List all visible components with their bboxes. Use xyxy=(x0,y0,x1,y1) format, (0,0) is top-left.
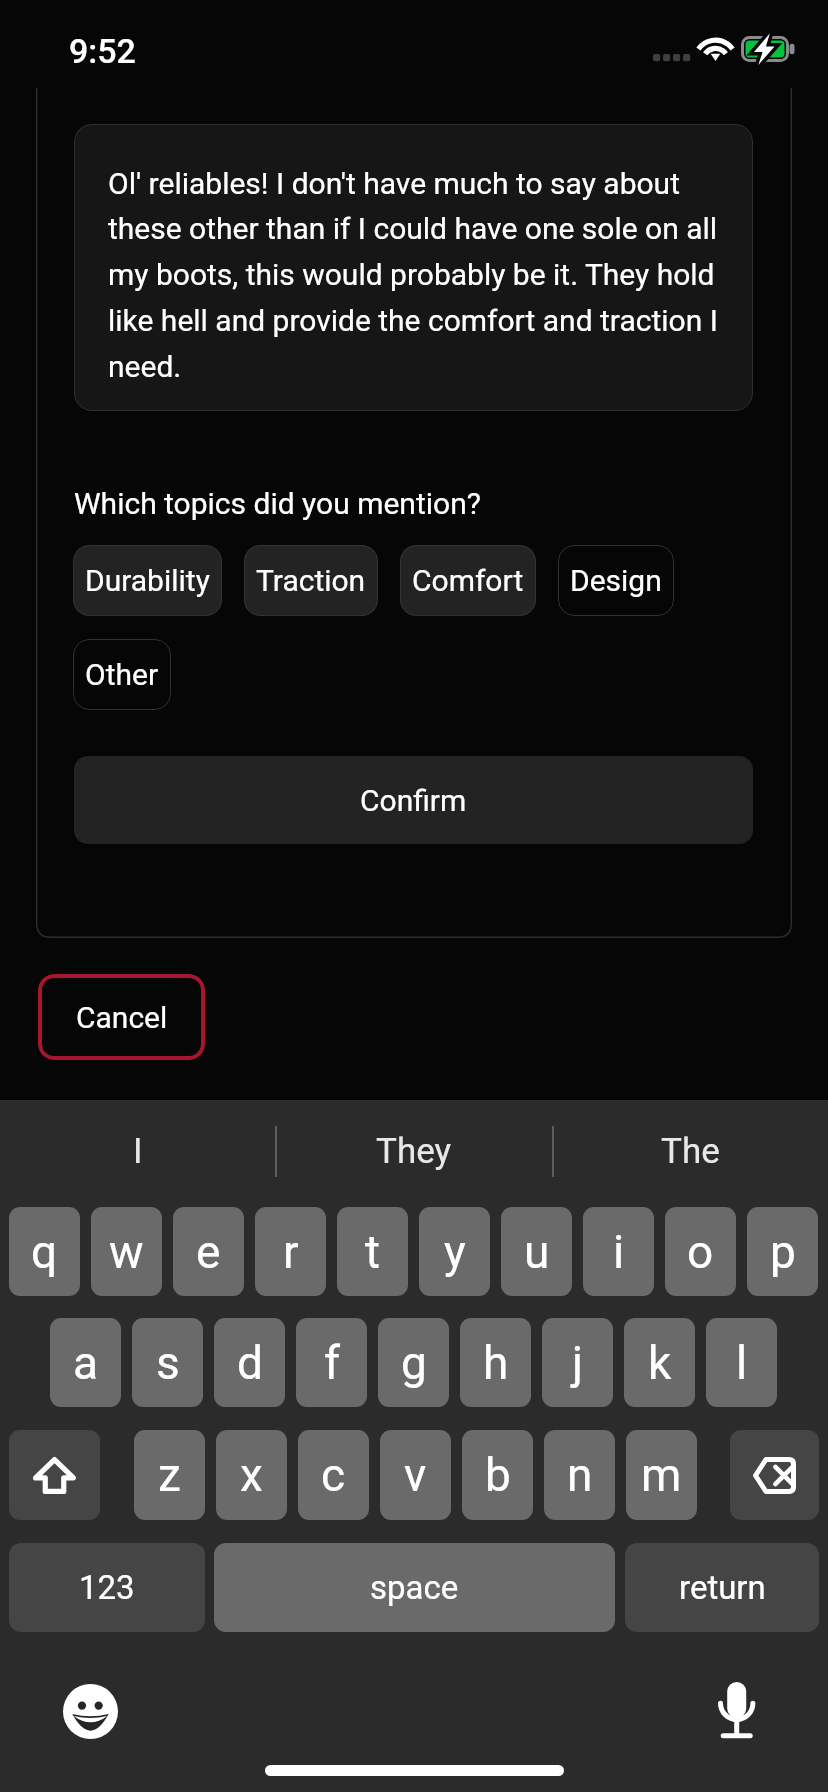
button[interactable]: i xyxy=(583,1207,654,1296)
staticText: m xyxy=(641,1448,682,1502)
staticText: space xyxy=(370,1568,459,1607)
button[interactable]: Design xyxy=(558,545,674,616)
staticText: Ol' reliables! I don't have much to say … xyxy=(108,166,731,385)
staticText: x xyxy=(240,1448,263,1502)
button[interactable]: h xyxy=(460,1318,531,1407)
staticText: i xyxy=(613,1225,625,1279)
button[interactable]: y xyxy=(419,1207,490,1296)
button[interactable]: z xyxy=(134,1430,205,1520)
button[interactable]: Durability xyxy=(73,545,222,616)
staticText: h xyxy=(483,1336,509,1390)
staticText: Other xyxy=(85,657,159,692)
button[interactable]: o xyxy=(665,1207,736,1296)
button[interactable]: v xyxy=(380,1430,451,1520)
button[interactable]: c xyxy=(298,1430,369,1520)
button[interactable]: Emoji xyxy=(63,1684,118,1739)
button[interactable]: Shift xyxy=(9,1430,100,1520)
staticText: g xyxy=(401,1336,427,1390)
button[interactable]: m xyxy=(626,1430,697,1520)
button[interactable]: w xyxy=(91,1207,162,1296)
button[interactable]: n xyxy=(544,1430,615,1520)
button[interactable]: g xyxy=(378,1318,449,1407)
staticText: d xyxy=(237,1336,263,1390)
button[interactable]: Cancel xyxy=(38,974,205,1060)
button[interactable]: The xyxy=(553,1100,828,1203)
staticText: z xyxy=(158,1448,181,1502)
staticText: k xyxy=(648,1336,672,1390)
button[interactable]: u xyxy=(501,1207,572,1296)
staticText: Traction xyxy=(256,563,366,598)
button[interactable]: k xyxy=(624,1318,695,1407)
button[interactable]: s xyxy=(132,1318,203,1407)
staticText: Durability xyxy=(85,563,210,598)
button[interactable]: e xyxy=(173,1207,244,1296)
staticText: v xyxy=(404,1448,427,1502)
staticText: q xyxy=(31,1225,58,1279)
staticText: The xyxy=(661,1131,720,1172)
button[interactable]: d xyxy=(214,1318,285,1407)
staticText: a xyxy=(73,1336,99,1390)
button[interactable]: f xyxy=(296,1318,367,1407)
button[interactable]: r xyxy=(255,1207,326,1296)
staticText: l xyxy=(736,1336,748,1390)
staticText: f xyxy=(324,1336,340,1390)
button[interactable]: x xyxy=(216,1430,287,1520)
button[interactable]: j xyxy=(542,1318,613,1407)
staticText: e xyxy=(196,1225,221,1279)
button[interactable]: They xyxy=(275,1100,553,1203)
staticText: I xyxy=(133,1131,143,1172)
button[interactable]: space xyxy=(214,1543,615,1632)
button[interactable]: t xyxy=(337,1207,408,1296)
button[interactable]: l xyxy=(706,1318,777,1407)
button[interactable]: Confirm xyxy=(74,756,753,844)
staticText: j xyxy=(572,1336,584,1390)
staticText: b xyxy=(485,1448,511,1502)
staticText: Which topics did you mention? xyxy=(74,486,481,521)
button[interactable]: b xyxy=(462,1430,533,1520)
staticText: Confirm xyxy=(360,783,467,818)
staticText: 123 xyxy=(79,1568,135,1607)
button[interactable]: return xyxy=(625,1543,819,1632)
staticText: They xyxy=(376,1131,452,1172)
button[interactable]: q xyxy=(9,1207,80,1296)
staticText: u xyxy=(524,1225,550,1279)
staticText: n xyxy=(567,1448,593,1502)
button[interactable]: Voice input xyxy=(718,1682,756,1740)
staticText: s xyxy=(156,1336,180,1390)
button[interactable]: Other xyxy=(73,639,171,710)
staticText: Design xyxy=(570,563,662,598)
button[interactable]: Comfort xyxy=(400,545,536,616)
staticText: Cancel xyxy=(76,1000,168,1035)
button[interactable]: 123 xyxy=(9,1543,205,1632)
button[interactable]: p xyxy=(747,1207,818,1296)
button[interactable]: a xyxy=(50,1318,121,1407)
staticText: t xyxy=(365,1225,381,1279)
staticText: p xyxy=(770,1225,796,1279)
staticText: o xyxy=(687,1225,714,1279)
staticText: y xyxy=(444,1225,466,1279)
staticText: 9:52 xyxy=(69,31,136,71)
button[interactable]: Traction xyxy=(244,545,378,616)
staticText: r xyxy=(283,1225,299,1279)
staticText: c xyxy=(321,1448,346,1502)
staticText: return xyxy=(679,1568,766,1607)
button[interactable]: Backspace xyxy=(730,1430,819,1520)
staticText: Comfort xyxy=(412,563,524,598)
button[interactable]: I xyxy=(0,1100,275,1203)
staticText: w xyxy=(109,1225,144,1279)
